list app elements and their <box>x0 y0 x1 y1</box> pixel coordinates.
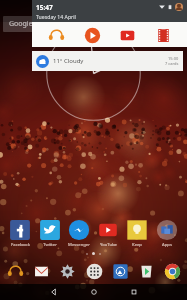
staticText: 7 cards <box>165 61 179 66</box>
button[interactable]: YouTube <box>116 24 138 46</box>
button[interactable]: Facebook <box>9 219 31 248</box>
button[interactable]: Keep <box>126 219 148 248</box>
button[interactable]: YouTube <box>97 219 119 248</box>
button[interactable]: Twitter <box>39 219 61 248</box>
button[interactable]: Photos <box>108 259 132 283</box>
button[interactable]: 11° Cloudy <box>32 51 183 71</box>
staticText: Messenger <box>68 242 90 248</box>
button[interactable]: Play Store <box>134 259 158 283</box>
staticText: Keep <box>132 242 142 248</box>
button[interactable]: Google <box>3 16 184 32</box>
button[interactable]: Back <box>43 284 65 300</box>
button[interactable]: Music <box>45 24 67 46</box>
button[interactable]: Home <box>83 284 105 300</box>
button[interactable]: Play Music <box>81 24 103 46</box>
staticText: 15:00 <box>168 56 179 61</box>
staticText: 15:47 <box>36 3 53 12</box>
button[interactable]: All apps <box>82 259 106 283</box>
staticText: Tuesday 14 April <box>36 13 76 20</box>
staticText: Apps <box>162 242 172 248</box>
button[interactable]: User profile <box>175 3 183 11</box>
staticText: Twitter <box>43 242 57 248</box>
staticText: 11° Cloudy <box>53 57 84 65</box>
button[interactable]: Recent apps <box>123 284 145 300</box>
button[interactable]: Chrome <box>160 259 184 283</box>
button[interactable]: 15:47 <box>32 0 187 22</box>
staticText: Facebook <box>11 242 30 248</box>
button[interactable]: Messenger <box>68 219 90 248</box>
button[interactable]: Videos <box>152 24 174 46</box>
button[interactable]: Apps folder <box>156 219 178 248</box>
staticText: Google <box>9 19 33 29</box>
button[interactable]: Gmail <box>29 259 53 283</box>
staticText: YouTube <box>100 242 117 248</box>
button[interactable]: Settings <box>55 259 79 283</box>
button[interactable]: Music <box>3 259 27 283</box>
